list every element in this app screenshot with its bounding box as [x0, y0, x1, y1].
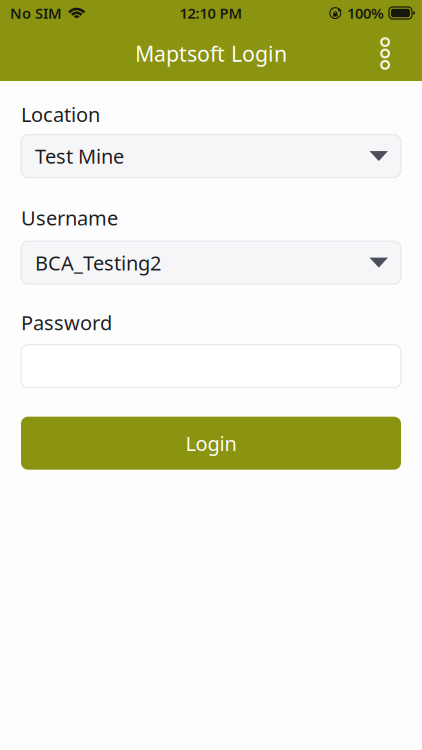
button[interactable]: Test Mine	[21, 135, 401, 178]
staticText: 12:10 PM	[179, 3, 242, 23]
button[interactable]: More options	[362, 30, 422, 77]
staticText: Location	[21, 101, 100, 128]
staticText: Username	[21, 205, 118, 231]
staticText: Test Mine	[35, 143, 124, 169]
staticText: BCA_Testing2	[35, 249, 161, 276]
staticText: Maptsoft Login	[135, 39, 287, 68]
button[interactable]: Login	[21, 417, 401, 470]
button[interactable]: BCA_Testing2	[21, 241, 401, 284]
button[interactable]: Password	[21, 345, 401, 388]
staticText: Login	[185, 430, 236, 456]
staticText: Password	[21, 309, 112, 336]
staticText: No SIM	[10, 3, 62, 23]
staticText: 100%	[347, 3, 384, 23]
